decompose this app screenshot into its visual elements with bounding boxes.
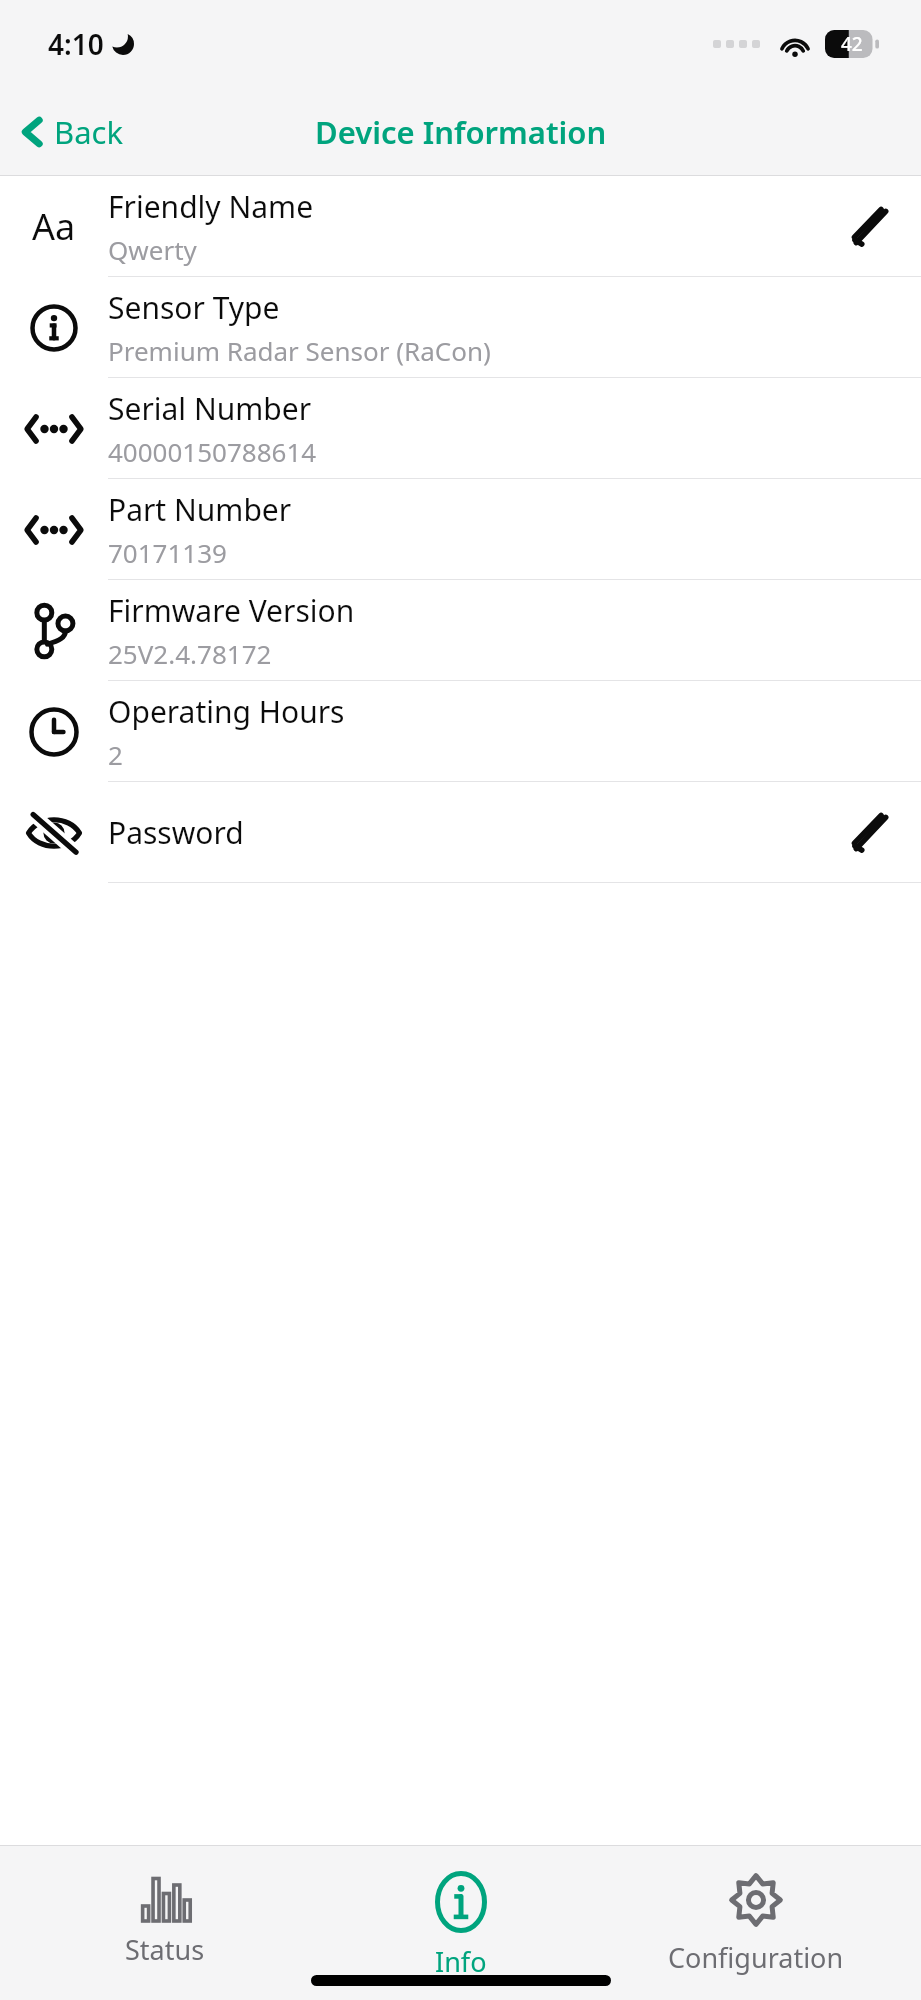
staticText: Operating Hours [108,691,345,732]
staticText: 4:10 [48,25,104,63]
staticText: Back [54,111,123,153]
staticText: Password [108,812,244,853]
button[interactable]: Aa [0,176,921,277]
button[interactable]: Part Number [0,479,921,580]
staticText: Firmware Version [108,590,355,631]
staticText: Serial Number [108,388,312,429]
staticText: Sensor Type [108,287,280,328]
staticText: 42 [841,31,863,57]
button[interactable]: Info [331,1867,591,1984]
button[interactable]: Configuration [626,1867,886,1980]
button[interactable]: Operating Hours [0,681,921,782]
staticText: Friendly Name [108,186,314,227]
staticText: Status [125,1931,205,1968]
button[interactable]: Firmware Version [0,580,921,681]
staticText: Configuration [668,1939,844,1976]
staticText: Premium Radar Sensor (RaCon) [108,333,491,368]
staticText: Aa [32,202,76,251]
staticText: 70171139 [108,535,227,570]
button[interactable]: Back [12,103,131,161]
button[interactable]: Status [35,1867,295,1972]
button[interactable]: Edit Password [821,782,921,883]
staticText: 25V2.4.78172 [108,636,272,671]
staticText: Part Number [108,489,292,530]
button[interactable]: Serial Number [0,378,921,479]
button[interactable]: Edit Friendly Name [821,176,921,277]
staticText: Info [435,1943,487,1980]
staticText: Device Information [315,111,607,153]
button[interactable]: Sensor Type [0,277,921,378]
staticText: Qwerty [108,232,197,267]
button[interactable]: Password [0,782,921,883]
staticText: 40000150788614 [108,434,317,469]
staticText: 2 [108,737,123,772]
